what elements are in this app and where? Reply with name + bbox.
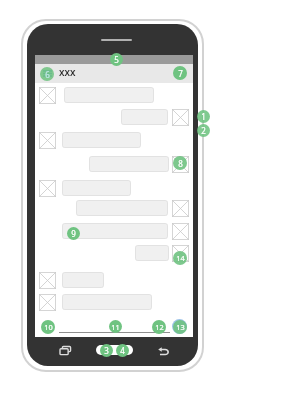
button[interactable]: Annotation 4 bbox=[116, 344, 129, 357]
button[interactable]: Annotation 8 bbox=[173, 156, 187, 170]
staticText: 3 bbox=[104, 345, 109, 356]
button[interactable]: Navigate up bbox=[43, 69, 52, 78]
button[interactable]: Message bbox=[62, 223, 168, 239]
staticText: 13 bbox=[176, 322, 185, 332]
button[interactable]: Avatar placeholder bbox=[39, 87, 56, 104]
button[interactable]: Avatar placeholder bbox=[39, 272, 56, 289]
button[interactable]: Annotation 3 bbox=[100, 344, 113, 357]
button[interactable]: Avatar placeholder bbox=[39, 132, 56, 149]
button[interactable]: Recents bbox=[60, 346, 71, 355]
staticText: 6 bbox=[45, 69, 50, 80]
staticText: 8 bbox=[178, 158, 183, 169]
button[interactable]: Message bbox=[64, 87, 154, 103]
button[interactable]: Avatar placeholder bbox=[39, 180, 56, 197]
button[interactable]: Annotation 5 bbox=[110, 53, 123, 66]
button[interactable]: Message bbox=[135, 245, 169, 261]
button[interactable]: Annotation 10 bbox=[41, 320, 55, 334]
button[interactable]: Message bbox=[62, 272, 104, 288]
staticText: 9 bbox=[71, 228, 76, 239]
button[interactable]: Message bbox=[62, 132, 141, 148]
button[interactable]: Annotation 13 bbox=[173, 320, 187, 334]
button[interactable]: Home bbox=[96, 345, 133, 355]
button[interactable]: Message bbox=[76, 200, 168, 216]
staticText: 14 bbox=[176, 253, 185, 263]
button[interactable]: Message bbox=[62, 180, 131, 196]
button[interactable]: Conversation title bar bbox=[35, 64, 193, 83]
button[interactable]: Avatar placeholder bbox=[39, 294, 56, 311]
button[interactable]: Message bbox=[62, 294, 152, 310]
button[interactable]: Annotation 14 bbox=[173, 251, 187, 265]
staticText: 1 bbox=[201, 111, 206, 122]
staticText: 4 bbox=[120, 345, 125, 356]
staticText: 2 bbox=[201, 125, 206, 136]
button[interactable]: Avatar placeholder bbox=[172, 109, 189, 126]
button[interactable]: Send bbox=[172, 319, 187, 334]
button[interactable]: Message bbox=[121, 109, 168, 125]
button[interactable]: Avatar placeholder bbox=[172, 245, 189, 262]
button[interactable]: Annotation 11 bbox=[109, 320, 122, 333]
button[interactable]: Annotation 1 bbox=[197, 110, 210, 123]
button[interactable]: Annotation 2 bbox=[197, 124, 210, 137]
button[interactable]: Avatar placeholder bbox=[172, 200, 189, 217]
staticText: 5 bbox=[114, 54, 119, 65]
button[interactable]: Message input field bbox=[59, 332, 170, 333]
button[interactable]: Avatar placeholder bbox=[172, 156, 189, 173]
button[interactable]: Back bbox=[158, 347, 169, 356]
staticText: 7 bbox=[178, 68, 183, 79]
button[interactable]: Annotation 9 bbox=[67, 227, 80, 240]
button[interactable]: Annotation 7 bbox=[173, 66, 187, 80]
staticText: XXX bbox=[59, 67, 76, 78]
button[interactable]: Message bbox=[89, 156, 169, 172]
button[interactable]: Annotation 12 bbox=[152, 320, 166, 334]
staticText: 12 bbox=[155, 322, 164, 332]
staticText: 11 bbox=[111, 322, 120, 332]
button[interactable]: Annotation 6 bbox=[40, 67, 54, 81]
button[interactable]: Avatar placeholder bbox=[172, 223, 189, 240]
staticText: 10 bbox=[44, 322, 53, 332]
